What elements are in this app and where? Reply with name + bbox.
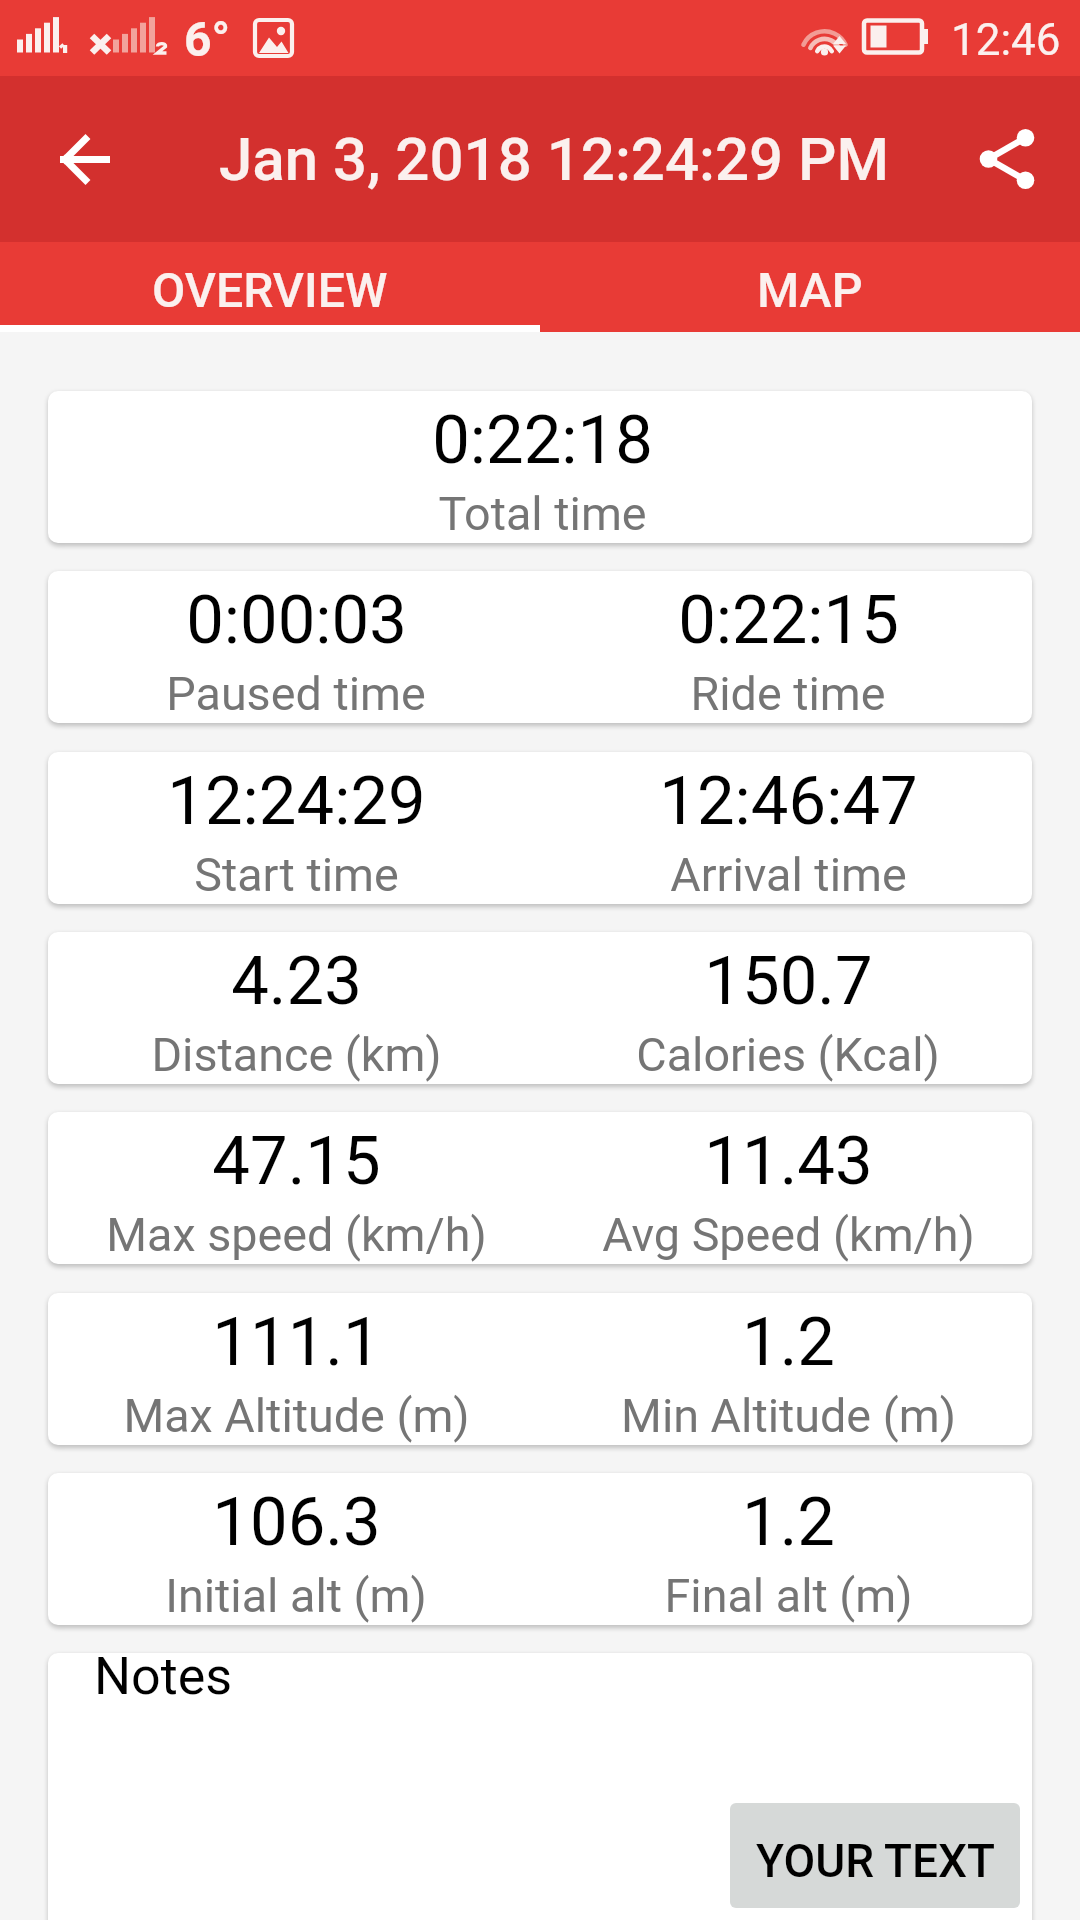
staticText: 47.15 (212, 1122, 381, 1201)
staticText: Arrival time (670, 848, 907, 903)
staticText: Total time (438, 487, 647, 542)
staticText: 0:00:03 (186, 581, 407, 660)
staticText: 12:46:47 (659, 762, 918, 841)
staticText: Distance (km) (151, 1028, 442, 1083)
staticText: 6° (184, 11, 231, 67)
staticText: YOUR TEXT (756, 1834, 995, 1888)
staticText: Start time (194, 848, 399, 903)
button[interactable]: 106.3 (48, 1473, 1032, 1625)
staticText: Initial alt (m) (165, 1569, 427, 1624)
button[interactable]: 0:22:18 (48, 391, 1032, 543)
staticText: Paused time (166, 667, 426, 722)
button[interactable]: OVERVIEW (0, 242, 540, 332)
staticText: 150.7 (704, 942, 873, 1021)
button[interactable]: 111.1 (48, 1293, 1032, 1445)
staticText: OVERVIEW (152, 262, 388, 318)
staticText: Max speed (km/h) (106, 1208, 487, 1263)
staticText: 4.23 (231, 942, 362, 1021)
button[interactable]: Navigate back (37, 111, 133, 207)
staticText: Calories (Kcal) (636, 1028, 940, 1083)
button[interactable]: 4.23 (48, 932, 1032, 1084)
staticText: Avg Speed (km/h) (602, 1208, 975, 1263)
staticText: 1.2 (742, 1483, 835, 1562)
button[interactable]: Share (959, 111, 1055, 207)
button[interactable]: 47.15 (48, 1112, 1032, 1264)
staticText: Ride time (690, 667, 886, 722)
button[interactable]: YOUR TEXT (730, 1803, 1020, 1908)
staticText: Jan 3, 2018 12:24:29 PM (219, 124, 889, 194)
staticText: 106.3 (212, 1483, 381, 1562)
button[interactable]: 0:00:03 (48, 571, 1032, 723)
button[interactable]: 12:24:29 (48, 752, 1032, 904)
staticText: 0:22:18 (432, 401, 653, 480)
staticText: 1.2 (742, 1303, 835, 1382)
staticText: 12:24:29 (167, 762, 426, 841)
staticText: Max Altitude (m) (123, 1389, 470, 1444)
staticText: 12:46 (951, 14, 1061, 66)
staticText: MAP (757, 262, 863, 318)
staticText: Min Altitude (m) (621, 1389, 956, 1444)
staticText: 11.43 (704, 1122, 873, 1201)
staticText: Final alt (m) (664, 1569, 913, 1624)
button[interactable]: Notes (48, 1653, 1032, 1920)
staticText: 0:22:15 (678, 581, 899, 660)
staticText: Notes (94, 1653, 233, 1707)
staticText: 111.1 (212, 1303, 381, 1382)
button[interactable]: MAP (540, 242, 1080, 332)
